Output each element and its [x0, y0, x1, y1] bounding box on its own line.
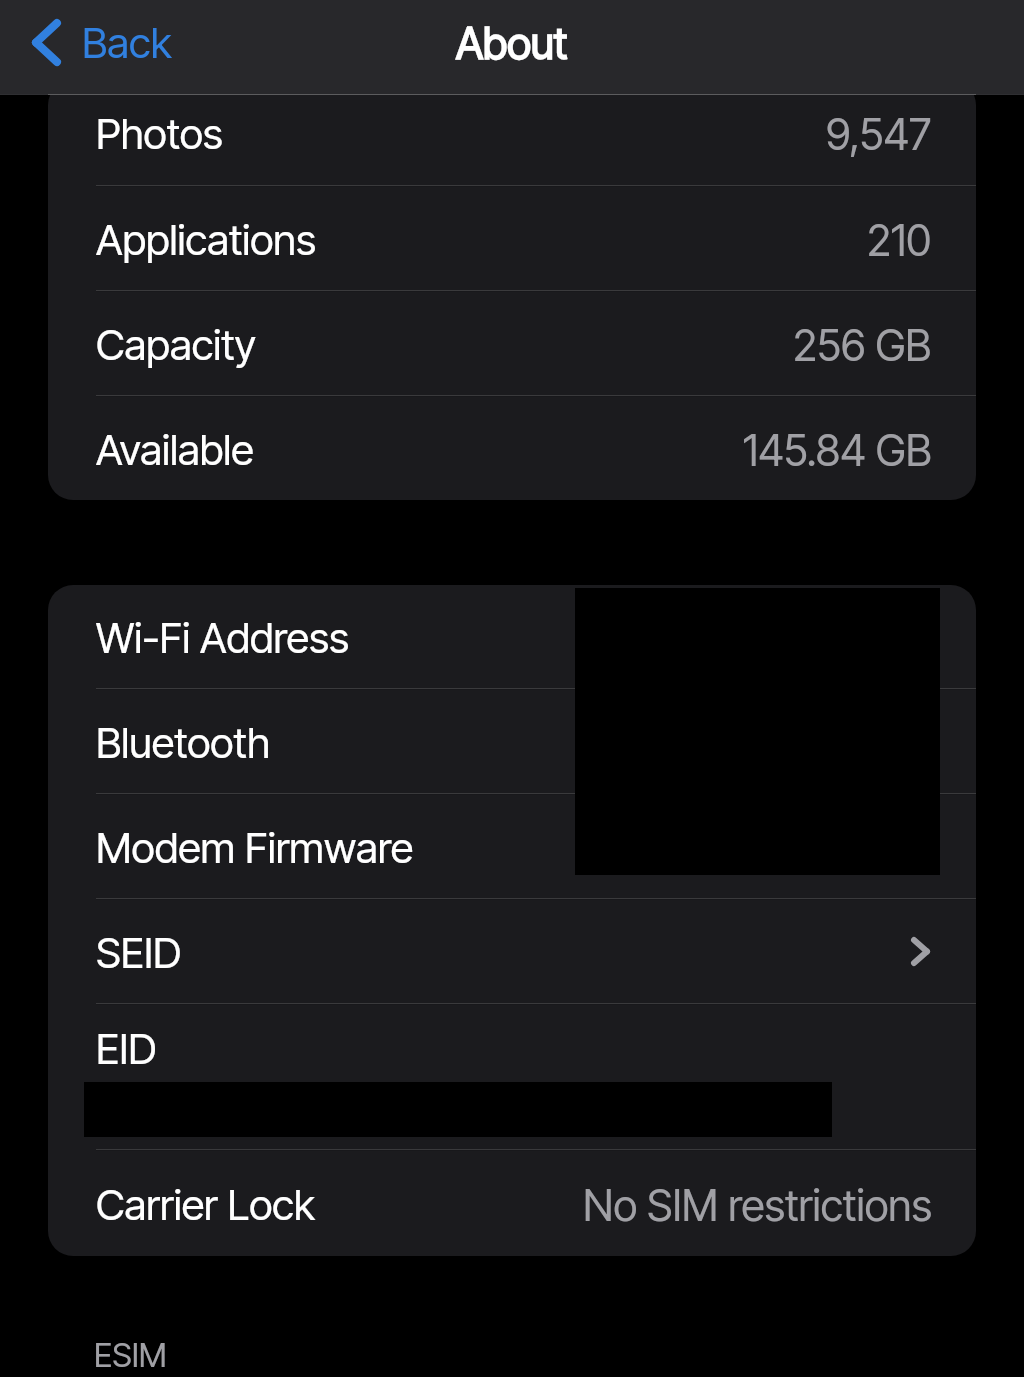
button[interactable]: Bluetooth — [48, 690, 976, 793]
staticText: Back — [82, 17, 172, 68]
staticText: Available — [96, 424, 254, 475]
staticText: Modem Firmware — [96, 822, 414, 873]
staticText: Capacity — [96, 319, 256, 370]
staticText: 9,547 — [826, 108, 932, 160]
button[interactable]: SEID — [48, 900, 976, 1003]
button[interactable]: Back — [26, 11, 180, 74]
staticText: 210 — [867, 214, 932, 266]
button[interactable]: Carrier Lock — [48, 1151, 976, 1256]
staticText: Photos — [96, 108, 223, 159]
staticText: No SIM restrictions — [583, 1179, 932, 1231]
other: Open SEID — [911, 937, 930, 966]
button[interactable]: Capacity — [48, 292, 976, 395]
button[interactable]: Modem Firmware — [48, 795, 976, 898]
button[interactable]: EID — [48, 1005, 976, 1149]
staticText: Bluetooth — [96, 717, 271, 768]
staticText: SEID — [96, 927, 182, 978]
button[interactable]: Available — [48, 397, 976, 500]
staticText: 256 GB — [793, 319, 932, 371]
staticText: 145.84 GB — [743, 424, 932, 476]
staticText: Carrier Lock — [96, 1179, 315, 1230]
staticText: About — [456, 17, 568, 69]
staticText: EID — [96, 1023, 157, 1074]
button[interactable]: Applications — [48, 187, 976, 290]
button[interactable]: Wi-Fi Address — [48, 585, 976, 688]
staticText: Applications — [96, 214, 316, 265]
staticText: ESIM — [94, 1335, 167, 1375]
staticText: Wi-Fi Address — [96, 612, 349, 663]
button[interactable]: Photos — [48, 80, 976, 185]
